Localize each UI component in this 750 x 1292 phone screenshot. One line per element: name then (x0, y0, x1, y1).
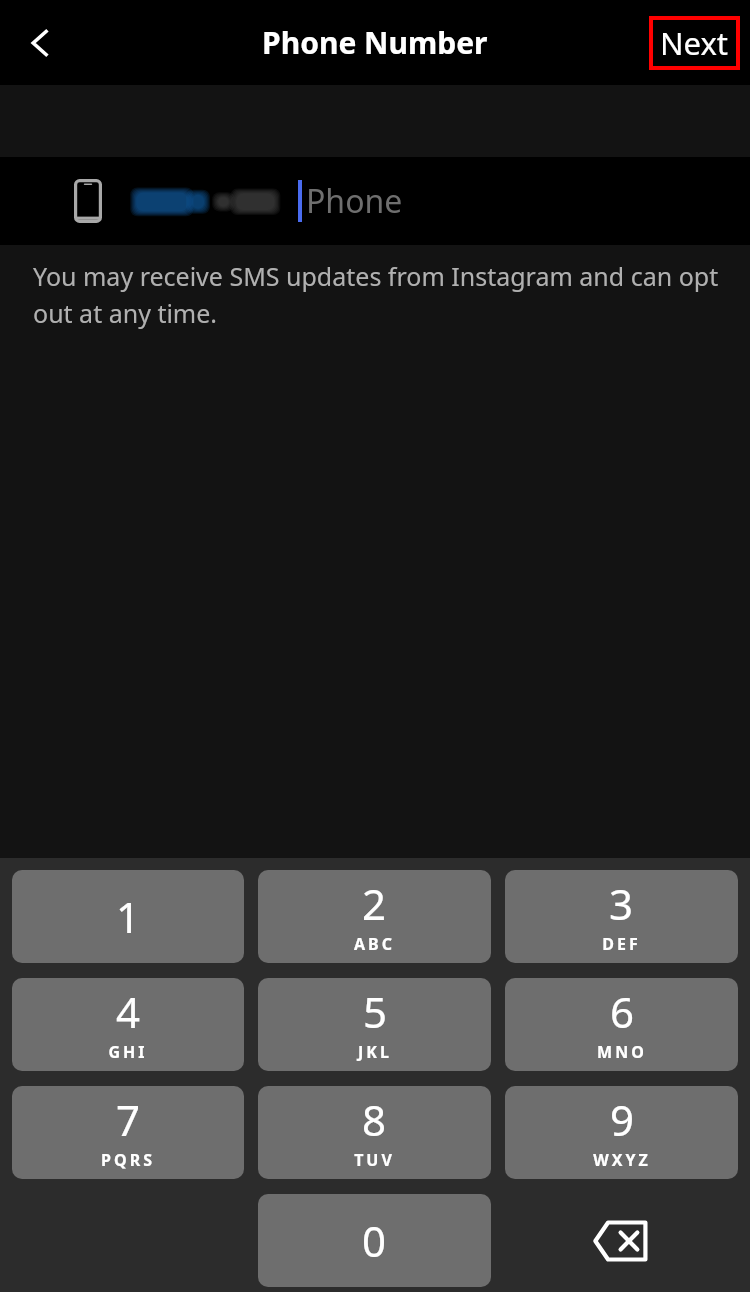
staticText: ABC (354, 933, 395, 955)
staticText: 7 (116, 1091, 141, 1148)
staticText: 2 (362, 875, 387, 932)
button[interactable]: 8 (258, 1086, 491, 1179)
staticText: 4 (116, 983, 141, 1040)
button[interactable]: Backspace (505, 1194, 738, 1287)
staticText: 8 (362, 1091, 387, 1148)
staticText: TUV (354, 1149, 395, 1171)
button[interactable]: 9 (505, 1086, 738, 1179)
staticText: Phone Number (262, 22, 488, 63)
staticText: 5 (363, 983, 388, 1040)
staticText: JKL (358, 1041, 392, 1063)
staticText: You may receive SMS updates from Instagr… (33, 259, 720, 330)
button[interactable]: 7 (12, 1086, 244, 1179)
staticText: 1 (116, 888, 141, 945)
button[interactable]: 1 (12, 870, 244, 963)
staticText: PQRS (101, 1149, 155, 1171)
staticText: GHI (108, 1041, 148, 1063)
staticText: MNO (597, 1041, 647, 1063)
staticText: 0 (362, 1212, 387, 1269)
staticText: 9 (610, 1091, 635, 1148)
button[interactable]: Next (649, 16, 740, 70)
button[interactable]: 2 (258, 870, 491, 963)
staticText: DEF (602, 933, 641, 955)
button[interactable]: 3 (505, 870, 738, 963)
staticText: Next (660, 22, 729, 64)
staticText: WXYZ (593, 1149, 651, 1171)
staticText: 3 (609, 875, 634, 932)
staticText: 6 (610, 983, 635, 1040)
button[interactable]: 0 (258, 1194, 491, 1287)
button[interactable]: 5 (258, 978, 491, 1071)
button[interactable]: Back (8, 11, 72, 75)
button[interactable]: Phone (0, 157, 750, 245)
staticText: Phone (306, 179, 403, 223)
button[interactable]: 4 (12, 978, 244, 1071)
button[interactable]: 6 (505, 978, 738, 1071)
